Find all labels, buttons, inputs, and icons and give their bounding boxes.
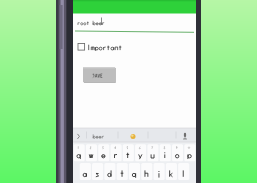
button[interactable]: Save bbox=[83, 67, 115, 82]
button[interactable]: Name text field, root beer bbox=[75, 15, 194, 33]
button[interactable]: Important checkbox bbox=[77, 41, 149, 55]
button[interactable]: Voice input bbox=[181, 130, 195, 143]
button[interactable]: Suggestion beer bbox=[90, 130, 124, 143]
